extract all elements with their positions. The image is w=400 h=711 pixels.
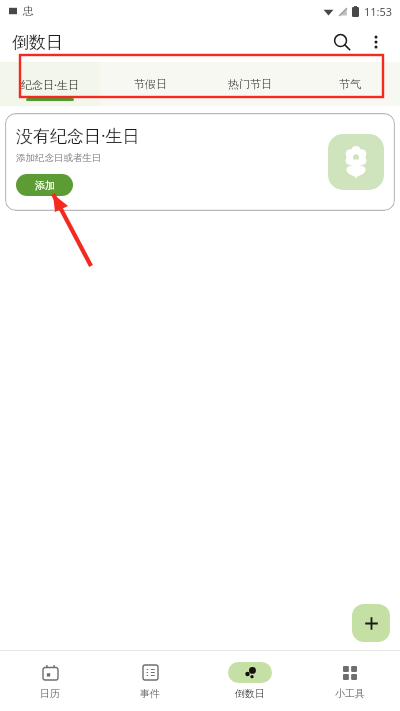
button[interactable]: 倒数日 [200, 651, 300, 711]
staticText: 倒数日 [235, 687, 265, 700]
staticText: 添加 [35, 179, 55, 192]
staticText: 节气 [339, 77, 361, 91]
staticText: 热门节日 [228, 77, 272, 91]
button[interactable]: 添加 [16, 174, 73, 196]
button[interactable]: 热门节日 [200, 62, 300, 106]
button[interactable]: 纪念日·生日 [0, 62, 100, 106]
staticText: 日历 [40, 687, 60, 700]
staticText: 添加纪念日或者生日 [16, 152, 102, 164]
staticText: 小工具 [335, 687, 365, 700]
button[interactable]: 事件 [100, 651, 200, 711]
staticText: 11:53 [364, 4, 393, 19]
button[interactable]: Add countdown [352, 604, 390, 642]
button[interactable]: 节气 [300, 62, 400, 106]
button[interactable]: 节假日 [100, 62, 200, 106]
button[interactable]: 小工具 [300, 651, 400, 711]
button[interactable]: Search [324, 24, 360, 60]
button[interactable]: More options [360, 26, 392, 58]
button[interactable]: 日历 [0, 651, 100, 711]
staticText: 节假日 [134, 77, 167, 91]
staticText: 事件 [140, 687, 160, 700]
staticText: 纪念日·生日 [21, 77, 79, 92]
staticText: 倒数日 [12, 32, 63, 53]
staticText: 没有纪念日·生日 [16, 124, 140, 147]
button[interactable]: 没有纪念日·生日 [5, 113, 395, 211]
staticText: 忠 [23, 4, 34, 18]
